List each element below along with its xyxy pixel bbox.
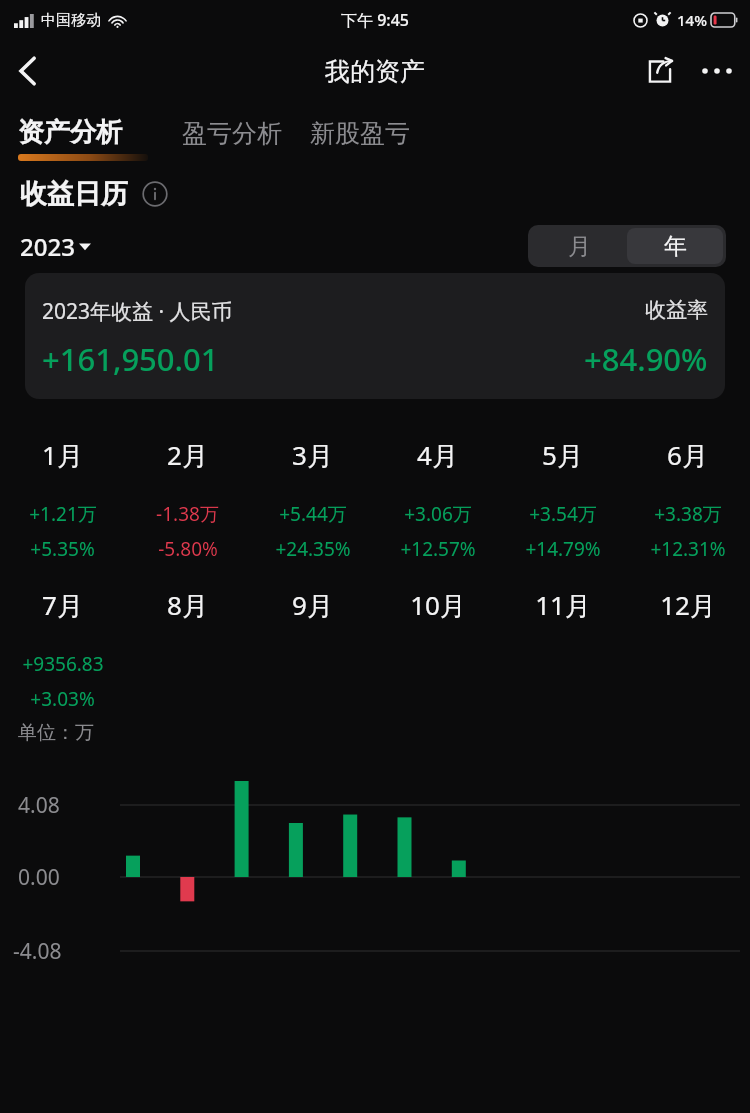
button[interactable]: Info — [142, 181, 168, 207]
staticText: 0.00 — [18, 863, 60, 892]
button[interactable]: 月 — [531, 228, 627, 264]
staticText: 6月 — [667, 437, 708, 473]
button[interactable]: Back — [0, 43, 56, 99]
staticText: +12.31% — [650, 536, 726, 562]
button[interactable]: 盈亏分析 — [182, 116, 282, 149]
staticText: 我的资产 — [325, 56, 425, 87]
staticText: 7月 — [42, 587, 83, 623]
staticText: 2023年收益 · 人民币 — [42, 297, 233, 326]
button[interactable]: 6月 — [625, 423, 750, 573]
staticText: 盈亏分析 — [182, 118, 282, 149]
staticText: 1月 — [42, 437, 83, 473]
staticText: 年 — [664, 232, 687, 261]
staticText: 单位：万 — [18, 721, 94, 745]
staticText: 8月 — [167, 587, 208, 623]
staticText: +3.54万 — [529, 501, 597, 527]
staticText: 新股盈亏 — [310, 118, 410, 149]
button[interactable]: 9月 — [250, 573, 375, 721]
staticText: -4.08 — [13, 937, 62, 966]
button[interactable]: 2023 — [20, 230, 91, 263]
button[interactable]: 7月 — [0, 573, 125, 721]
button[interactable]: 11月 — [500, 573, 625, 721]
button[interactable]: 4月 — [375, 423, 500, 573]
staticText: 5月 — [542, 437, 583, 473]
button[interactable]: 新股盈亏 — [310, 116, 410, 149]
staticText: 14% — [677, 10, 707, 30]
staticText: 中国移动 — [41, 11, 101, 30]
staticText: 10月 — [410, 587, 466, 623]
staticText: 4月 — [417, 437, 458, 473]
staticText: 2023 — [20, 230, 75, 263]
staticText: 3月 — [292, 437, 333, 473]
staticText: 4.08 — [18, 791, 60, 820]
staticText: 月 — [568, 232, 591, 261]
staticText: +1.21万 — [29, 501, 97, 527]
button[interactable]: 12月 — [625, 573, 750, 721]
staticText: 收益率 — [645, 297, 708, 323]
staticText: +5.35% — [30, 536, 95, 562]
staticText: +24.35% — [275, 536, 351, 562]
staticText: 资产分析 — [18, 116, 122, 149]
staticText: 12月 — [660, 587, 716, 623]
button[interactable]: 8月 — [125, 573, 250, 721]
staticText: +9356.83 — [22, 651, 104, 677]
staticText: 9月 — [292, 587, 333, 623]
button[interactable]: 10月 — [375, 573, 500, 721]
staticText: +5.44万 — [279, 501, 347, 527]
staticText: -5.80% — [158, 536, 218, 562]
staticText: 收益日历 — [20, 177, 128, 211]
staticText: +3.03% — [30, 686, 95, 712]
button[interactable]: 3月 — [250, 423, 375, 573]
button[interactable]: 1月 — [0, 423, 125, 573]
staticText: +3.06万 — [404, 501, 472, 527]
staticText: -1.38万 — [156, 501, 219, 527]
button[interactable]: 年 — [627, 228, 723, 264]
button[interactable]: 资产分析 — [18, 116, 148, 161]
button[interactable]: Share — [632, 43, 688, 99]
staticText: +14.79% — [525, 536, 601, 562]
staticText: +3.38万 — [654, 501, 722, 527]
button[interactable]: 2023年收益 · 人民币 — [25, 273, 725, 399]
staticText: +12.57% — [400, 536, 476, 562]
button[interactable]: 2月 — [125, 423, 250, 573]
staticText: 2月 — [167, 437, 208, 473]
button[interactable]: More options — [688, 42, 746, 100]
staticText: 下午 9:45 — [341, 9, 409, 31]
staticText: 11月 — [535, 587, 591, 623]
staticText: +161,950.01 — [42, 338, 219, 380]
staticText: +84.90% — [584, 338, 708, 380]
button[interactable]: 5月 — [500, 423, 625, 573]
